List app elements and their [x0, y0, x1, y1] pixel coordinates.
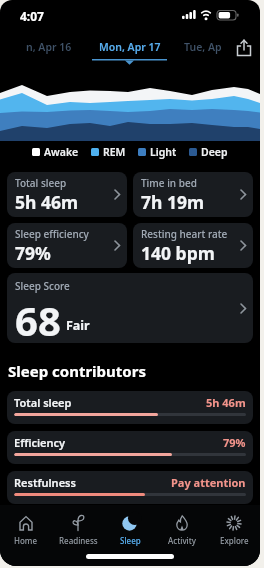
staticText: Sleep Score	[15, 279, 70, 293]
staticText: 4:07	[20, 8, 44, 24]
staticText: 5h 46m	[206, 395, 246, 410]
staticText: 5h 46m	[15, 190, 79, 214]
staticText: 79%	[223, 435, 246, 450]
button[interactable]	[236, 39, 252, 57]
staticText: Fair	[66, 317, 90, 334]
button[interactable]: Activity	[156, 505, 208, 551]
button[interactable]: n, Apr 16	[26, 40, 72, 54]
staticText: Sleep contributors	[8, 361, 146, 381]
staticText: Explore	[220, 535, 249, 546]
button[interactable]: Total sleep	[7, 391, 253, 424]
staticText: Total sleep	[15, 176, 67, 190]
staticText: Time in bed	[141, 176, 197, 190]
staticText: Mon, Apr 17	[99, 40, 161, 54]
staticText: Light	[150, 145, 177, 159]
staticText: Deep	[201, 145, 228, 159]
staticText: REM	[103, 145, 126, 159]
button[interactable]: Efficiency	[7, 431, 253, 464]
staticText: 68	[15, 293, 61, 343]
staticText: Awake	[44, 145, 79, 159]
button[interactable]: Explore	[208, 505, 260, 551]
staticText: Sleep	[120, 535, 141, 546]
staticText: 79%	[15, 241, 51, 265]
button[interactable]: Resting heart rate	[133, 223, 253, 268]
staticText: Restfulness	[14, 475, 76, 490]
button[interactable]: Restfulness	[7, 471, 253, 504]
button[interactable]: Tue, Ap	[184, 40, 222, 54]
button[interactable]: Sleep Score	[7, 273, 253, 343]
staticText: Pay attention	[171, 475, 246, 490]
staticText: Readiness	[59, 535, 98, 546]
button[interactable]: Sleep	[104, 505, 156, 551]
button[interactable]: Time in bed	[133, 172, 253, 217]
button[interactable]: Sleep efficiency	[7, 223, 127, 268]
staticText: Efficiency	[14, 435, 66, 450]
staticText: Activity	[168, 535, 197, 546]
button[interactable]: Mon, Apr 17	[92, 40, 167, 67]
staticText: 140 bpm	[141, 241, 215, 265]
staticText: 7h 19m	[141, 190, 205, 214]
button[interactable]: Home	[0, 505, 52, 551]
staticText: Total sleep	[14, 395, 72, 410]
staticText: Home	[14, 535, 38, 546]
staticText: Resting heart rate	[141, 227, 228, 241]
button[interactable]: Total sleep	[7, 172, 127, 217]
button[interactable]: Readiness	[52, 505, 104, 551]
staticText: Sleep efficiency	[15, 227, 89, 241]
